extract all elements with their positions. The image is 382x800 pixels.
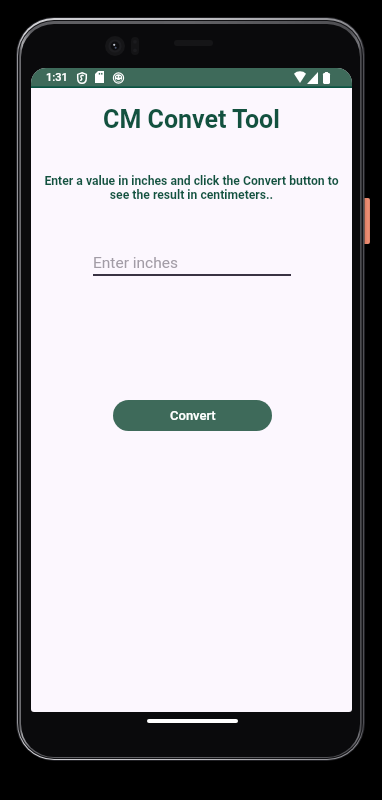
other: Power button [364, 198, 370, 244]
staticText: 1:31 [46, 71, 68, 84]
staticText: Enter a value in inches and click the Co… [43, 174, 340, 202]
button[interactable]: Enter inches [93, 254, 291, 276]
staticText: CM Convet Tool [31, 105, 352, 134]
staticText: Convert [170, 408, 216, 423]
button[interactable]: Convert [113, 400, 272, 431]
staticText: Enter inches [93, 254, 178, 272]
